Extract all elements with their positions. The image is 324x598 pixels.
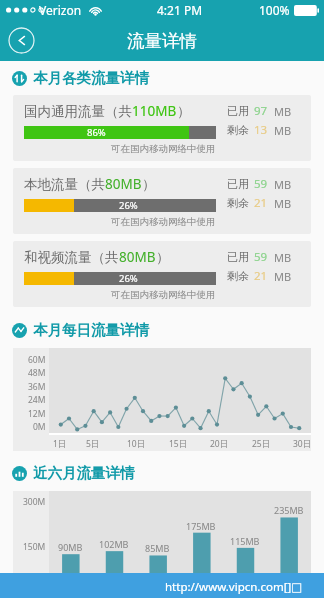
staticText: 60M (28, 354, 46, 366)
staticText: 剩余 (227, 196, 249, 210)
staticText: 175MB (186, 520, 216, 532)
staticText: MB (274, 177, 292, 192)
staticText: 102MB (99, 538, 129, 550)
button[interactable]: 国内通用流量（共 (13, 95, 311, 161)
staticText: 已用 (227, 104, 249, 118)
staticText: 21 (254, 195, 268, 211)
staticText: MB (274, 123, 292, 138)
staticText: MB (274, 250, 292, 265)
staticText: 90MB (58, 541, 83, 553)
staticText: 20日 (210, 438, 229, 450)
staticText: 本月各类流量详情 (33, 69, 149, 87)
staticText: 26% (119, 199, 138, 212)
staticText: 流量详情 (127, 30, 197, 52)
staticText: 1日 (53, 438, 67, 450)
button[interactable]: 本地流量（共 (13, 168, 311, 234)
staticText: 国内通用流量（共 (24, 103, 132, 120)
button[interactable]: Back (8, 27, 35, 54)
staticText: 59 (254, 176, 268, 192)
staticText: 已用 (227, 250, 249, 264)
staticText: 本地流量（共 (24, 176, 105, 193)
staticText: 85MB (145, 542, 170, 554)
staticText: 150M (23, 541, 46, 553)
staticText: MB (274, 104, 292, 119)
staticText: 剩余 (227, 269, 249, 283)
staticText: 48M (28, 367, 46, 379)
staticText: ） (177, 103, 191, 120)
staticText: 97 (254, 103, 268, 119)
staticText: 100% (259, 2, 290, 18)
staticText: MB (274, 196, 292, 211)
staticText: 110MB (132, 102, 177, 120)
staticText: 可在国内移动网络中使用 (111, 143, 216, 155)
staticText: 已用 (227, 177, 249, 191)
staticText: http://www.vipcn.com[]□ (165, 579, 303, 595)
staticText: 36M (28, 381, 46, 393)
staticText: 300M (23, 496, 46, 508)
staticText: 13 (254, 122, 268, 138)
staticText: 可在国内移动网络中使用 (111, 216, 216, 228)
staticText: 12M (28, 408, 46, 420)
staticText: 80MB (105, 175, 142, 193)
staticText: 0M (33, 421, 46, 433)
staticText: 和视频流量（共 (24, 249, 119, 266)
staticText: 本月每日流量详情 (33, 321, 149, 339)
staticText: 15日 (169, 438, 188, 450)
staticText: 80MB (119, 248, 156, 266)
staticText: 30日 (293, 438, 312, 450)
staticText: 近六月流量详情 (33, 464, 135, 482)
staticText: 5日 (86, 438, 100, 450)
staticText: 26% (119, 272, 138, 285)
staticText: 25日 (252, 438, 271, 450)
staticText: 可在国内移动网络中使用 (111, 289, 216, 301)
staticText: 10日 (127, 438, 146, 450)
staticText: 86% (87, 126, 106, 139)
staticText: Verizon (39, 2, 82, 18)
staticText: ） (156, 249, 170, 266)
staticText: 59 (254, 249, 268, 265)
staticText: 235MB (274, 504, 304, 516)
staticText: 4:21 PM (157, 2, 203, 18)
staticText: 24M (28, 394, 46, 406)
staticText: 剩余 (227, 123, 249, 137)
button[interactable]: 和视频流量（共 (13, 241, 311, 307)
staticText: 115MB (230, 535, 260, 547)
staticText: MB (274, 269, 292, 284)
staticText: ） (142, 176, 156, 193)
staticText: 21 (254, 268, 268, 284)
